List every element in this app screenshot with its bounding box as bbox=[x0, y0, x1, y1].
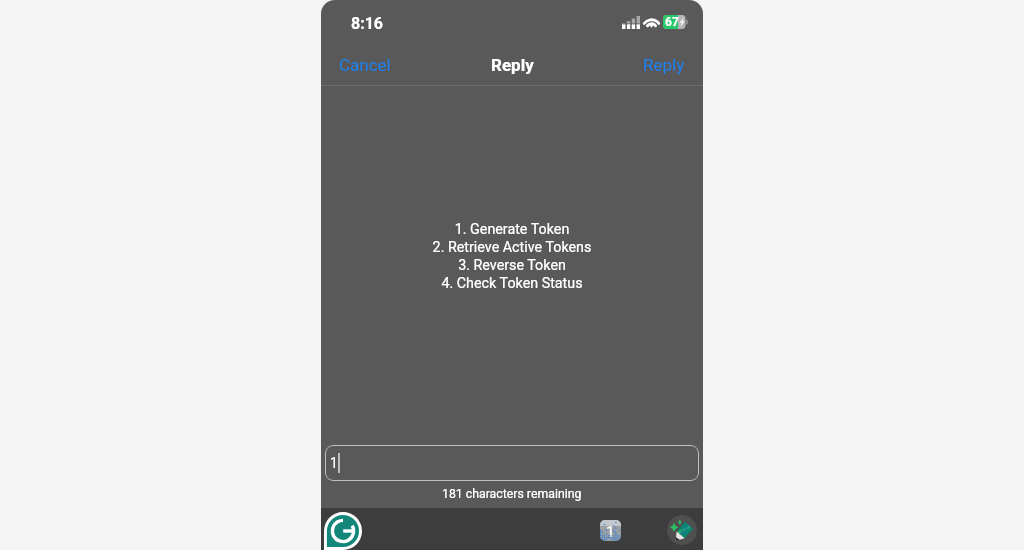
button[interactable]: 1 bbox=[325, 445, 699, 481]
staticText: 1 bbox=[330, 455, 338, 471]
staticText: Reply bbox=[643, 55, 685, 75]
staticText: 67 bbox=[665, 15, 679, 29]
button[interactable]: Reply bbox=[625, 48, 703, 82]
staticText: 1. Generate Token 2. Retrieve Active Tok… bbox=[321, 221, 703, 292]
button[interactable]: Grammarly bbox=[324, 512, 362, 550]
staticText: 181 characters remaining bbox=[442, 487, 582, 501]
staticText: 1 bbox=[606, 523, 615, 541]
staticText: Reply bbox=[491, 55, 534, 75]
staticText: Cancel bbox=[339, 55, 391, 75]
staticText: 8:16 bbox=[351, 14, 384, 33]
button[interactable]: Calendar bbox=[600, 520, 621, 541]
button[interactable]: Edit with AI bbox=[667, 515, 697, 545]
button[interactable]: Cancel bbox=[321, 48, 409, 82]
